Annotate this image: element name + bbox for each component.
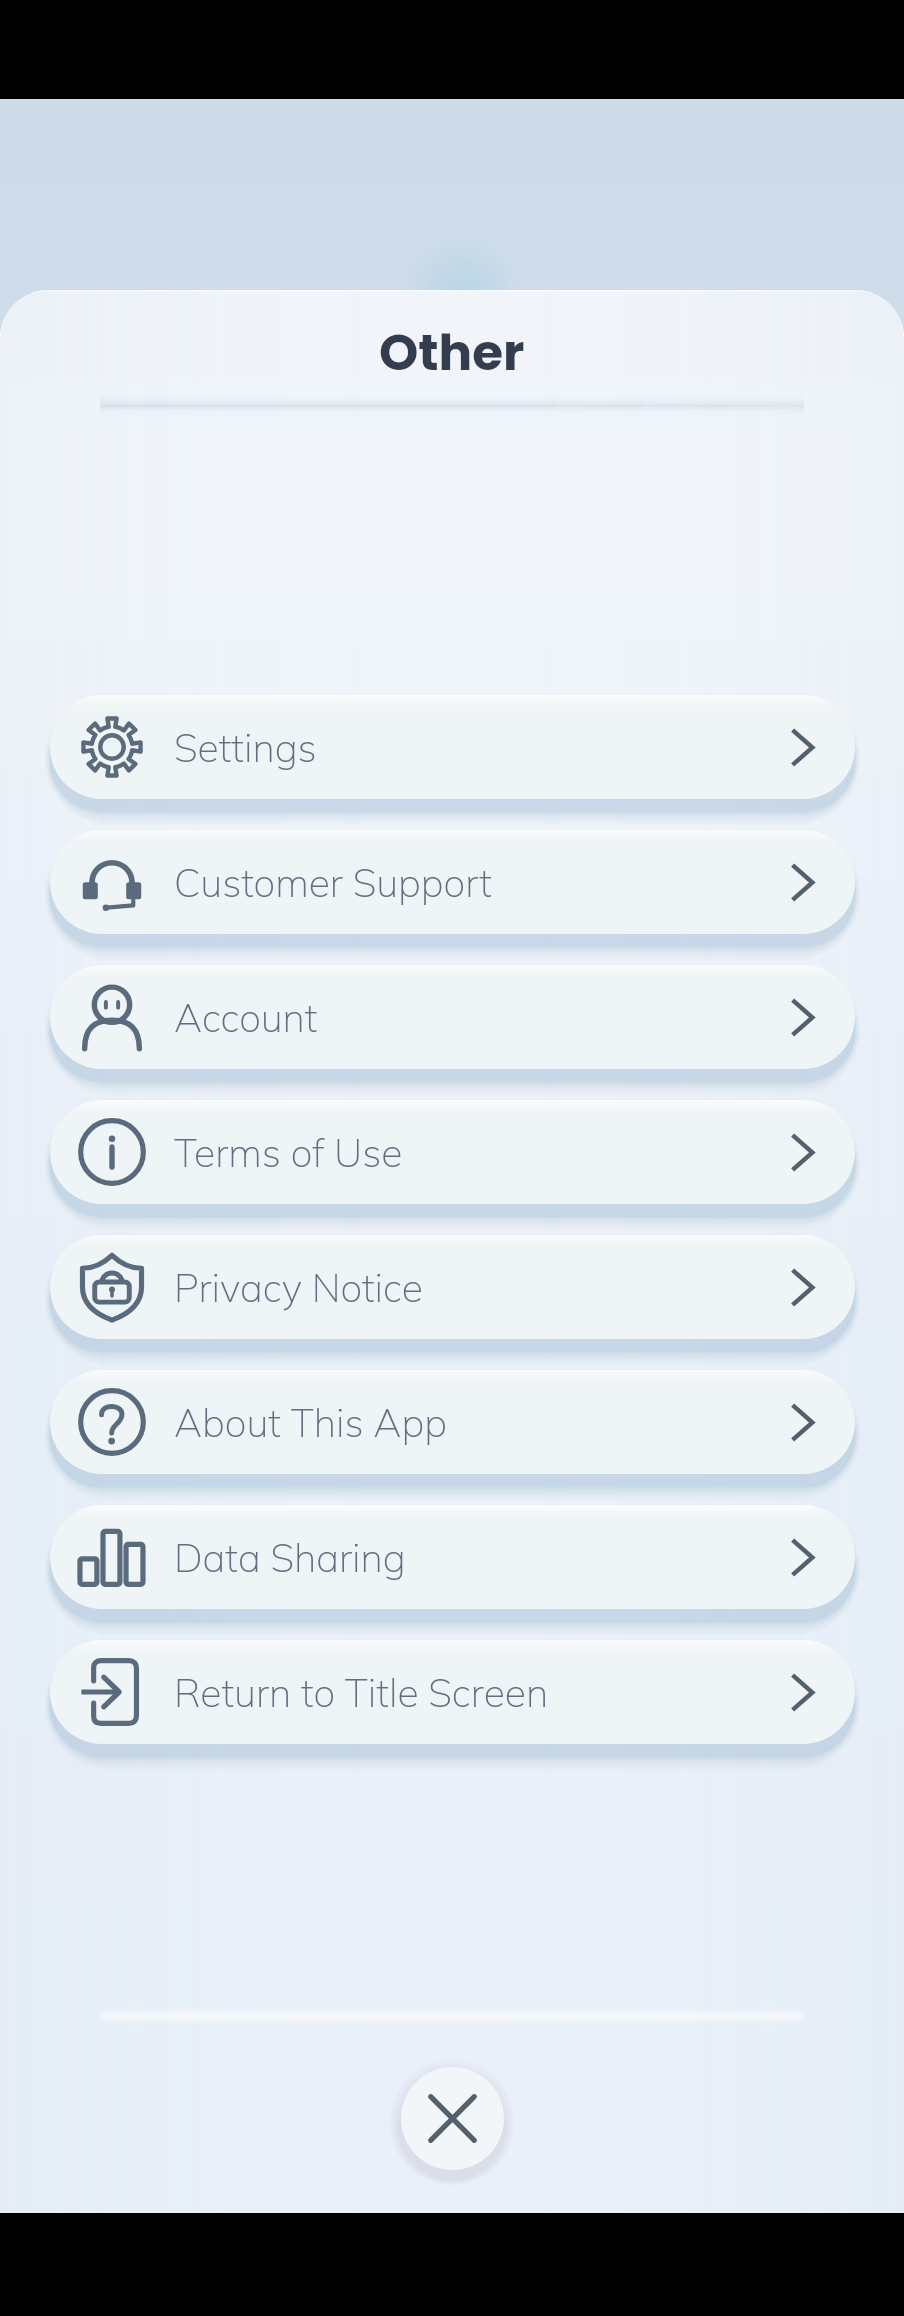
staticText: Other — [379, 318, 525, 388]
staticText: Customer Support — [174, 858, 492, 907]
staticText: Account — [174, 993, 318, 1042]
staticText: About This App — [174, 1398, 447, 1447]
button[interactable]: Privacy Notice — [50, 1235, 855, 1339]
button[interactable]: Return to Title Screen — [50, 1640, 855, 1744]
button[interactable]: Terms of Use — [50, 1100, 855, 1204]
button[interactable]: Account — [50, 965, 855, 1069]
button[interactable]: About This App — [50, 1370, 855, 1474]
button[interactable]: Close — [401, 2067, 504, 2170]
button[interactable]: Settings — [50, 695, 855, 799]
staticText: Privacy Notice — [174, 1263, 423, 1312]
staticText: Return to Title Screen — [174, 1668, 549, 1717]
staticText: Data Sharing — [174, 1533, 406, 1582]
staticText: Terms of Use — [174, 1128, 403, 1177]
button[interactable]: Data Sharing — [50, 1505, 855, 1609]
button[interactable]: Customer Support — [50, 830, 855, 934]
staticText: Settings — [174, 723, 317, 772]
